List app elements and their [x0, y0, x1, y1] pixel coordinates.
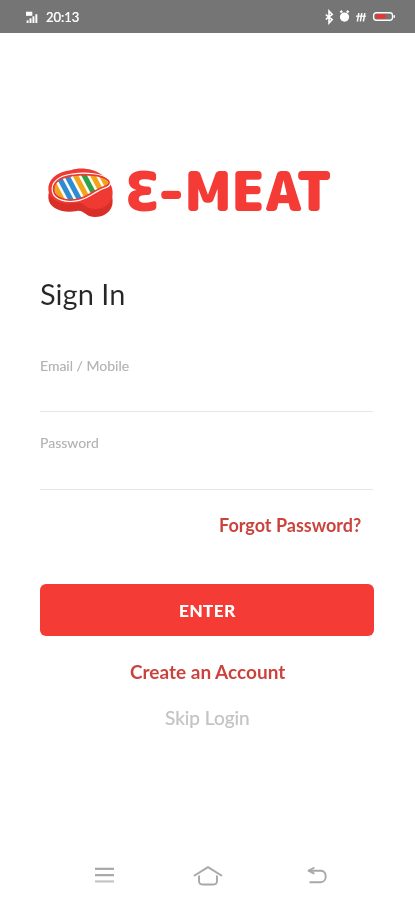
staticText: Password — [40, 434, 99, 451]
staticText: Create an Account — [130, 660, 286, 683]
button[interactable]: Skip Login — [157, 700, 258, 735]
staticText: Skip Login — [165, 706, 250, 729]
button[interactable]: Create an Account — [122, 654, 294, 689]
button[interactable]: Forgot Password? — [213, 508, 368, 542]
staticText: 20:13 — [46, 9, 80, 25]
staticText: ENTER — [179, 600, 236, 620]
staticText: Ɛ-MEAT — [126, 152, 333, 229]
button[interactable]: ENTER — [40, 584, 374, 636]
staticText: Email / Mobile — [40, 357, 130, 374]
button[interactable]: Back — [293, 851, 341, 899]
button[interactable]: Home — [184, 851, 232, 899]
button[interactable]: Recent apps — [80, 851, 128, 899]
staticText: Sign In — [40, 276, 126, 311]
staticText: Forgot Password? — [219, 514, 362, 536]
